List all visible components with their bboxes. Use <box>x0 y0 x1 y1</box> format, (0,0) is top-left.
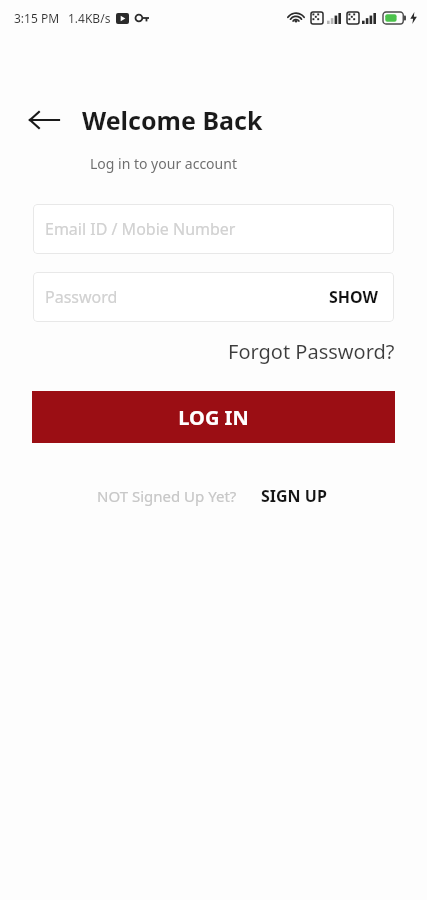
staticText: Log in to your account <box>90 154 237 173</box>
button[interactable]: Email ID / Mobie Number <box>33 204 394 254</box>
button[interactable]: Password <box>33 272 394 322</box>
staticText: Forgot Password? <box>228 338 395 365</box>
button[interactable]: LOG IN <box>32 391 395 443</box>
staticText: SIGN UP <box>261 485 327 507</box>
button[interactable]: SIGN UP <box>257 481 331 511</box>
staticText: 3:15 PM <box>14 10 60 26</box>
staticText: LOG IN <box>178 404 249 431</box>
staticText: Password <box>45 286 118 308</box>
staticText: 1.4KB/s <box>68 10 111 26</box>
staticText: NOT Signed Up Yet? <box>97 486 237 506</box>
staticText: Welcome Back <box>82 103 263 137</box>
staticText: SHOW <box>329 286 379 308</box>
button[interactable]: Back <box>22 98 66 142</box>
button[interactable]: Forgot Password? <box>224 334 399 369</box>
button[interactable]: SHOW <box>314 272 394 322</box>
staticText: Email ID / Mobie Number <box>45 218 236 240</box>
